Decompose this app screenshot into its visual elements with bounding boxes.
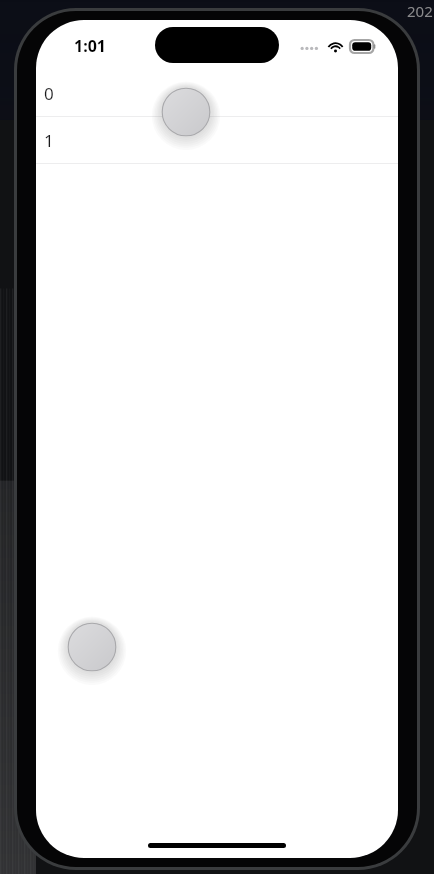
other: Loading [63,618,121,676]
staticText: 1 [44,129,54,152]
staticText: 0 [44,82,54,105]
other: Loading [157,83,215,141]
staticText: 1:01 [74,35,106,57]
staticText: 202 [407,1,433,21]
button[interactable]: 1 [36,117,398,164]
button[interactable]: 0 [36,70,398,117]
